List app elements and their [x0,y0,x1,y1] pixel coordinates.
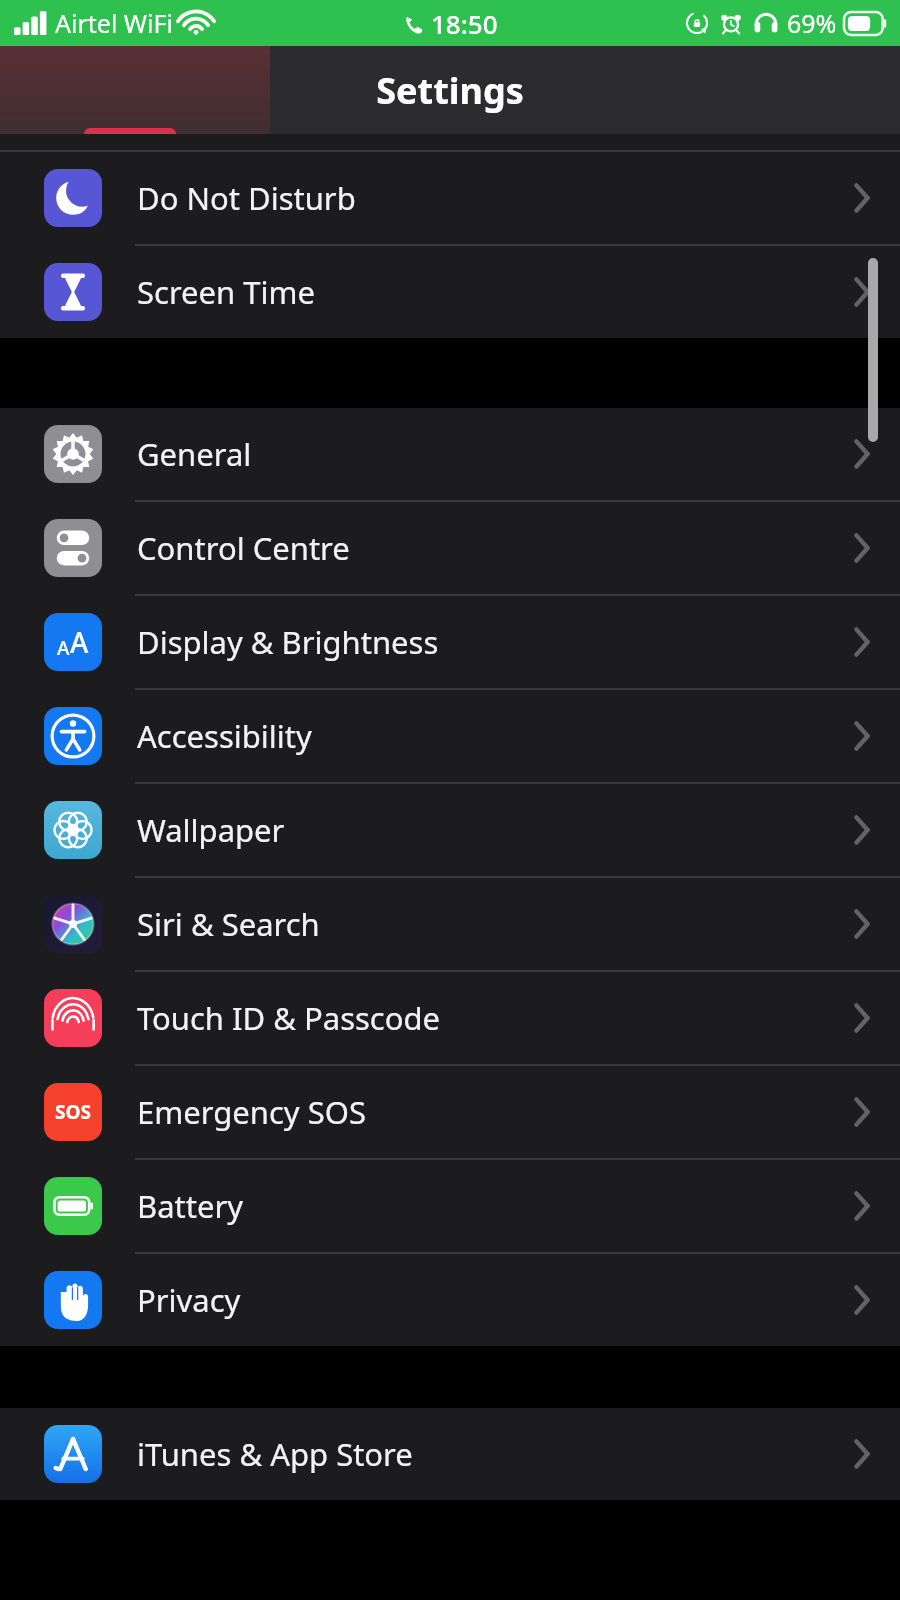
staticText: Emergency SOS [137,1091,366,1133]
button[interactable]: A [0,596,900,688]
button[interactable]: SOS [0,1066,900,1158]
staticText: General [137,433,252,475]
button[interactable]: Control Centre [0,502,900,594]
button[interactable]: iTunes & App Store [0,1408,900,1500]
staticText: Screen Time [137,271,315,313]
staticText: iTunes & App Store [137,1433,413,1475]
staticText: Battery [137,1185,244,1227]
staticText: A [57,635,70,661]
staticText: Touch ID & Passcode [137,997,441,1039]
button[interactable]: Do Not Disturb [0,152,900,244]
staticText: Siri & Search [137,903,320,945]
staticText: A [70,623,89,661]
button[interactable]: Privacy [0,1254,900,1346]
button[interactable]: Battery [0,1160,900,1252]
staticText: Settings [376,66,524,115]
staticText: 18:50 [431,6,498,41]
staticText: Control Centre [137,527,350,569]
staticText: Do Not Disturb [137,177,356,219]
staticText: Wallpaper [137,809,285,851]
button[interactable]: Wallpaper [0,784,900,876]
button[interactable]: Touch ID & Passcode [0,972,900,1064]
staticText: Display & Brightness [137,621,439,663]
button[interactable]: Screen Time [0,246,900,338]
staticText: 69% [787,6,837,40]
button[interactable]: Siri & Search [0,878,900,970]
staticText: SOS [55,1099,91,1125]
staticText: Privacy [137,1279,241,1321]
button[interactable]: General [0,408,900,500]
staticText: Accessibility [137,715,312,757]
button[interactable]: Accessibility [0,690,900,782]
staticText: Airtel WiFi [55,6,173,40]
